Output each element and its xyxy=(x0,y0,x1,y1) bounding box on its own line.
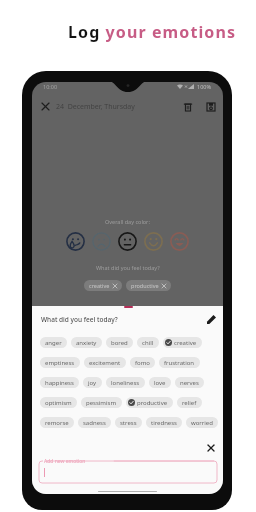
staticText: excitement xyxy=(89,359,121,367)
button[interactable]: Save xyxy=(205,101,216,112)
staticText: Log your emotions xyxy=(68,21,237,43)
button[interactable]: nerves xyxy=(175,377,204,388)
staticText: anger xyxy=(45,339,62,347)
staticText: worried xyxy=(191,419,213,427)
button[interactable]: fomo xyxy=(130,357,155,368)
staticText: relief xyxy=(182,399,197,407)
staticText: creative xyxy=(89,282,110,289)
staticText: Add new emotion xyxy=(44,458,86,465)
button[interactable]: excitement xyxy=(84,357,126,368)
staticText: stress xyxy=(120,419,137,427)
button[interactable]: Edit xyxy=(204,312,218,326)
button[interactable]: joy xyxy=(83,377,102,388)
staticText: What did you feel today? xyxy=(41,315,118,324)
staticText: creative xyxy=(174,339,197,347)
button[interactable]: loneliness xyxy=(106,377,145,388)
button[interactable]: Close xyxy=(40,101,51,112)
staticText: chill xyxy=(142,339,154,347)
button[interactable]: remorse xyxy=(40,417,74,428)
button[interactable]: bored xyxy=(106,337,133,348)
staticText: happiness xyxy=(45,379,74,387)
button[interactable]: creative xyxy=(163,337,202,348)
button[interactable]: tiredness xyxy=(146,417,182,428)
staticText: 10:00 xyxy=(43,83,58,90)
staticText: fomo xyxy=(135,359,150,367)
button[interactable]: anxiety xyxy=(71,337,102,348)
button[interactable]: love xyxy=(149,377,171,388)
button[interactable]: Add new emotion xyxy=(39,461,217,483)
button[interactable]: creative xyxy=(84,280,122,291)
staticText: anxiety xyxy=(76,339,97,347)
staticText: 24 December, Thursday xyxy=(56,102,135,112)
staticText: emptiness xyxy=(45,359,75,367)
button[interactable]: sadness xyxy=(78,417,111,428)
staticText: remorse xyxy=(45,419,69,427)
staticText: joy xyxy=(88,379,97,387)
button[interactable]: pessimism xyxy=(81,397,122,408)
staticText: productive xyxy=(137,399,168,407)
staticText: frustration xyxy=(164,359,195,367)
button[interactable]: emptiness xyxy=(40,357,80,368)
staticText: Overall day color: xyxy=(105,218,150,225)
staticText: love xyxy=(154,379,166,387)
button[interactable]: happiness xyxy=(40,377,79,388)
button[interactable]: frustration xyxy=(159,357,200,368)
staticText: loneliness xyxy=(111,379,140,387)
staticText: What did you feel today? xyxy=(96,264,160,271)
staticText: 100% xyxy=(197,83,212,90)
button[interactable]: chill xyxy=(137,337,159,348)
button[interactable]: anger xyxy=(40,337,67,348)
button[interactable]: Delete xyxy=(182,101,193,112)
button[interactable]: Close xyxy=(204,441,217,454)
staticText: tiredness xyxy=(151,419,177,427)
staticText: bored xyxy=(111,339,128,347)
staticText: sadness xyxy=(83,419,106,427)
button[interactable]: worried xyxy=(186,417,218,428)
staticText: pessimism xyxy=(86,399,117,407)
button[interactable]: productive xyxy=(126,280,171,291)
staticText: productive xyxy=(131,282,159,289)
button[interactable]: relief xyxy=(177,397,202,408)
button[interactable]: productive xyxy=(126,397,173,408)
button[interactable]: optimism xyxy=(40,397,77,408)
staticText: optimism xyxy=(45,399,72,407)
staticText: nerves xyxy=(180,379,199,387)
button[interactable]: stress xyxy=(115,417,142,428)
